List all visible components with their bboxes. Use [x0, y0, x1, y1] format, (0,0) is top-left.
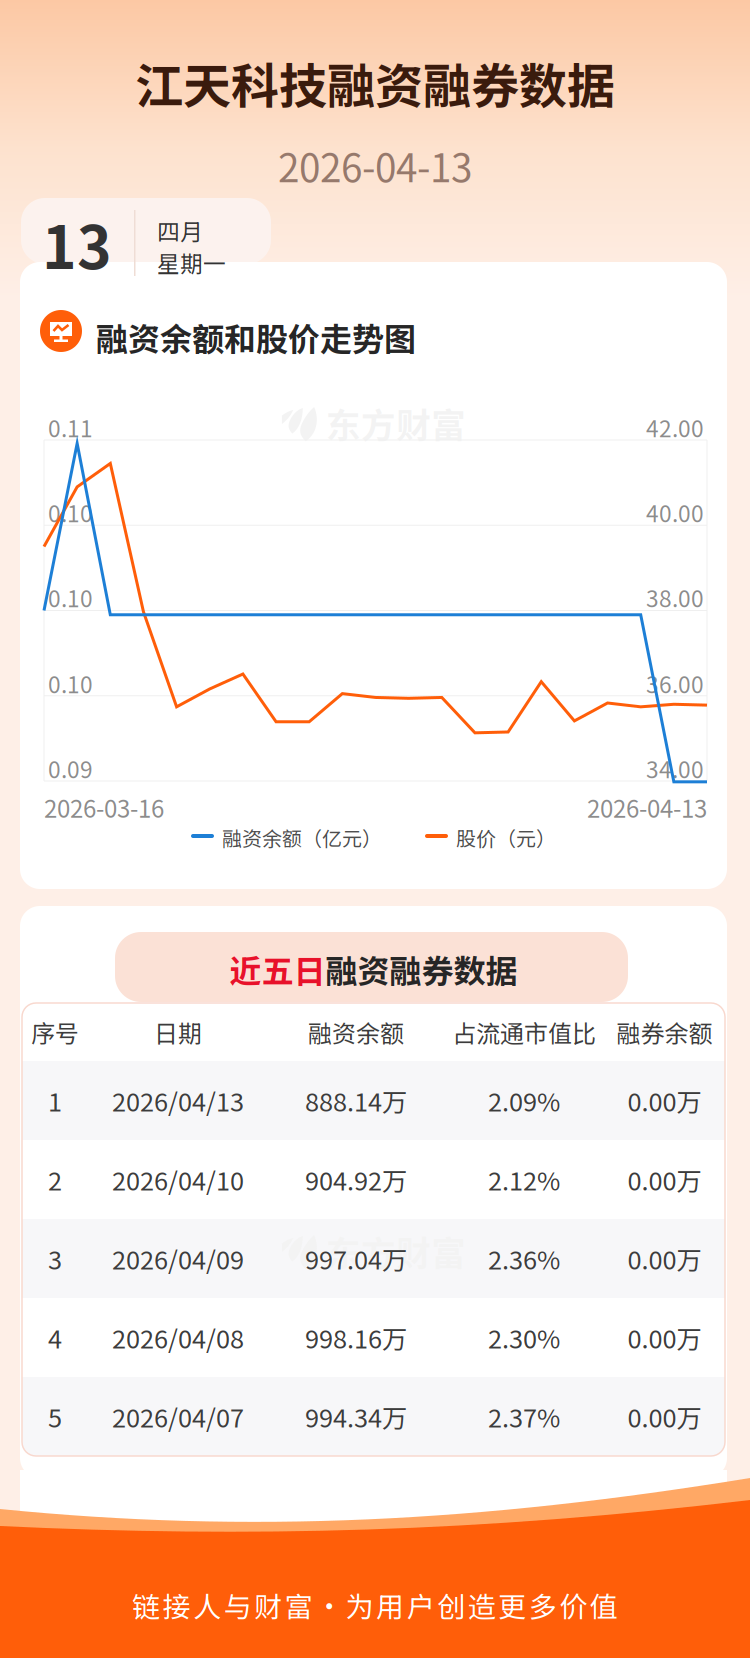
staticText: 四月: [157, 214, 203, 247]
staticText: 997.04万: [305, 1240, 407, 1277]
staticText: 融资余额和股价走势图: [96, 314, 416, 360]
staticText: 2.30%: [488, 1319, 560, 1356]
staticText: 0.11: [48, 411, 93, 444]
staticText: 融券余额: [616, 1015, 712, 1049]
staticText: 40.00: [646, 496, 704, 529]
staticText: 链接人与财富·为用户创造更多价值: [132, 1585, 618, 1625]
staticText: 2.36%: [488, 1240, 560, 1277]
staticText: 4: [48, 1319, 62, 1356]
staticText: 0.09: [48, 752, 93, 785]
staticText: 994.34万: [305, 1398, 407, 1435]
staticText: 占流通市值比: [452, 1015, 596, 1049]
staticText: 2026/04/13: [112, 1082, 244, 1119]
staticText: 0.00万: [627, 1240, 701, 1277]
staticText: 2026-04-13: [278, 137, 472, 193]
staticText: 星期一: [157, 246, 226, 279]
staticText: 2.12%: [488, 1161, 560, 1198]
staticText: 2026/04/09: [112, 1240, 244, 1277]
staticText: 1: [48, 1082, 62, 1119]
staticText: 融资余额（亿元）: [222, 823, 382, 852]
staticText: 0.10: [48, 667, 93, 700]
staticText: 36.00: [646, 667, 704, 700]
staticText: 东方财富: [326, 398, 466, 448]
staticText: 0.10: [48, 581, 93, 614]
staticText: 0.00万: [627, 1082, 701, 1119]
staticText: 0.00万: [627, 1161, 701, 1198]
staticText: 日期: [154, 1015, 202, 1049]
staticText: 0.00万: [627, 1319, 701, 1356]
staticText: 904.92万: [305, 1161, 407, 1198]
staticText: 0.00万: [627, 1398, 701, 1435]
staticText: 42.00: [646, 411, 704, 444]
staticText: 0.10: [48, 496, 93, 529]
staticText: 2026/04/10: [112, 1161, 244, 1198]
staticText: 2026-03-16: [44, 790, 164, 825]
staticText: 2026-04-13: [587, 790, 707, 825]
staticText: 34.00: [646, 752, 704, 785]
staticText: 2.37%: [488, 1398, 560, 1435]
staticText: 2: [48, 1161, 62, 1198]
staticText: 序号: [31, 1015, 79, 1049]
staticText: 38.00: [646, 581, 704, 614]
staticText: 股价（元）: [456, 823, 556, 852]
staticText: 融资融券数据: [325, 946, 517, 992]
staticText: 2026/04/07: [112, 1398, 244, 1435]
staticText: 998.16万: [305, 1319, 407, 1356]
staticText: 融资余额: [308, 1015, 404, 1049]
staticText: 888.14万: [305, 1082, 407, 1119]
staticText: 5: [48, 1398, 62, 1435]
staticText: 近五日: [229, 946, 325, 992]
staticText: 2.09%: [488, 1082, 560, 1119]
staticText: 江天科技融资融券数据: [135, 48, 615, 117]
staticText: 3: [48, 1240, 62, 1277]
staticText: 2026/04/08: [112, 1319, 244, 1356]
staticText: 13: [42, 201, 112, 286]
staticText: 东方财富: [326, 1226, 466, 1276]
